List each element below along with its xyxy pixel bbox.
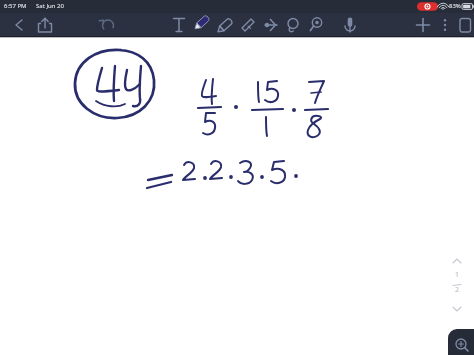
staticText: 83% xyxy=(449,2,461,10)
button[interactable]: Add page xyxy=(412,14,434,36)
button[interactable]: Page navigation xyxy=(446,256,468,314)
button[interactable]: Selection tool xyxy=(260,14,282,36)
button[interactable]: Undo xyxy=(95,14,119,36)
button[interactable]: Microphone xyxy=(338,14,362,36)
button[interactable]: Pages xyxy=(455,14,474,36)
button[interactable]: Back xyxy=(6,14,32,36)
button[interactable]: Shape tool xyxy=(304,14,326,36)
staticText: 6:57 PM xyxy=(4,2,27,10)
button[interactable]: Pen tool xyxy=(190,13,214,36)
button[interactable]: Text tool xyxy=(168,14,190,36)
button[interactable]: Zoom xyxy=(448,329,474,355)
staticText: Sat Jun 20 xyxy=(36,2,64,10)
button[interactable]: Share xyxy=(32,14,56,36)
button[interactable]: Highlighter xyxy=(214,14,236,36)
staticText: 2 xyxy=(455,285,460,295)
button[interactable]: More options xyxy=(436,14,454,36)
button[interactable]: Eraser xyxy=(236,14,260,36)
button[interactable]: Lasso xyxy=(282,14,304,36)
staticText: 1 xyxy=(455,270,460,280)
